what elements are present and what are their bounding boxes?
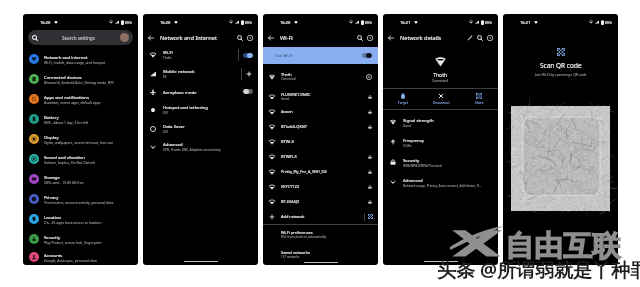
staticText: BTWi-fi [281,139,294,144]
button[interactable]: Storage [23,169,138,189]
button[interactable]: Search [475,33,485,43]
button[interactable]: Search [28,30,133,45]
staticText: Connected [432,79,449,83]
staticText: Pretty_Fly_For_A_WiFi_5G [281,169,327,174]
staticText: Network and internet [44,54,88,60]
button[interactable]: Toggle [243,53,253,58]
staticText: On - 45 apps have access to location [44,220,102,225]
button[interactable]: Network and internet [23,49,138,69]
button[interactable]: Battery [23,109,138,129]
button[interactable]: BTWi-fi [263,134,378,149]
staticText: Wi-Fi [163,49,173,55]
button[interactable]: Arwen [263,104,378,119]
staticText: Privacy [44,194,59,200]
button[interactable]: Toggle [243,89,253,94]
staticText: Battery [44,114,59,120]
button[interactable]: Security [383,152,498,172]
staticText: Volume, haptics, Do Not Disturb [44,160,96,165]
staticText: Saved networks [281,250,310,255]
button[interactable]: Signal strength [383,112,498,132]
button[interactable]: Help [485,33,495,43]
staticText: Wi-Fi preferences [281,230,313,235]
button[interactable]: Help [245,33,255,43]
button[interactable]: Frequency [383,132,498,152]
staticText: Styles, wallpapers, screen timeout, font… [44,140,114,145]
button[interactable]: Add network [263,209,378,224]
staticText: BT-6XASJZ [281,199,300,204]
button[interactable]: Account [120,33,129,42]
staticText: Mobile network [163,68,195,74]
staticText: FLUSSNET-9NKC [281,92,311,97]
staticText: Connected [281,77,296,81]
button[interactable]: Apps and notifications [23,89,138,109]
staticText: Security [403,157,420,163]
button[interactable]: Mobile network [143,64,258,83]
button[interactable]: Back [146,33,156,43]
button[interactable]: Use Wi-Fi [263,47,378,64]
staticText: Display [44,134,59,140]
staticText: Good [403,124,411,128]
staticText: Aeroplane mode [163,89,197,95]
button[interactable]: Forget [383,89,422,109]
button[interactable]: SKYCY123 [263,179,378,194]
button[interactable]: Pretty_Fly_For_A_WiFi_5G [263,164,378,179]
button[interactable]: Display [23,129,138,149]
button[interactable]: Add [246,71,252,77]
staticText: Apps and notifications [44,94,89,100]
button[interactable]: Thoth [263,64,378,89]
staticText: Data Saver [163,123,185,129]
button[interactable]: BT-6XASJZ [263,194,378,209]
staticText: 85% [605,20,612,25]
button[interactable]: BTWiFi-X [263,149,378,164]
button[interactable]: Wi-Fi [143,45,258,64]
staticText: 38% used - 19.80 GB free [44,180,84,185]
staticText: Advanced [403,177,423,183]
staticText: EE [163,75,167,79]
staticText: Permissions, account activity, personal … [44,200,114,205]
button[interactable]: Location [23,209,138,229]
button[interactable]: Search [355,33,365,43]
staticText: 85% [245,20,252,25]
button[interactable]: Back [386,33,396,43]
button[interactable]: Aeroplane mode [143,83,258,100]
staticText: 85% - About 1 day, 4 hrs left [44,120,89,125]
button[interactable]: Advanced [143,138,258,155]
staticText: Sound and vibration [44,154,85,160]
button[interactable]: Disconnect [422,89,460,109]
staticText: 16:20 [40,20,51,25]
button[interactable]: Hotspot and tethering [143,100,258,119]
button[interactable]: Data Saver [143,119,258,138]
staticText: Network and Internet [160,34,217,42]
staticText: Wi-Fi turns back on automatically [281,235,326,239]
button[interactable]: Help [365,33,375,43]
button[interactable]: BThub6-QKN7 [263,119,378,134]
button[interactable]: Back [266,33,276,43]
staticText: Assistant, recent apps, default apps [44,100,101,105]
button[interactable]: Edit [465,33,475,43]
staticText: Join Wi-Fi by scanning a QR code [535,72,587,77]
button[interactable]: FLUSSNET-9NKC [263,89,378,104]
staticText: 137 networks [281,255,300,259]
staticText: Hotspot and tethering [163,104,208,110]
staticText: Location [44,214,62,220]
button[interactable]: Security [23,229,138,249]
other: Scan QR code [368,214,373,219]
button[interactable]: Connected devices [23,69,138,89]
staticText: Storage [44,174,60,180]
button[interactable]: Privacy [23,189,138,209]
staticText: 85% [365,20,372,25]
button[interactable]: Sound and vibration [23,149,138,169]
button[interactable]: Use Wi-Fi [362,53,372,58]
button[interactable]: Accounts [23,249,138,265]
button[interactable]: Share [460,89,498,109]
staticText: 85% [485,20,492,25]
staticText: Frequency [403,137,424,143]
staticText: Signal strength [403,117,434,123]
staticText: 自由互联 [505,228,621,265]
staticText: Saved [281,97,290,101]
button[interactable]: Search [235,33,245,43]
staticText: Connected devices [44,74,82,80]
staticText: Scan QR code [540,61,582,70]
staticText: Off [163,111,168,115]
button[interactable]: Advanced [383,172,498,192]
